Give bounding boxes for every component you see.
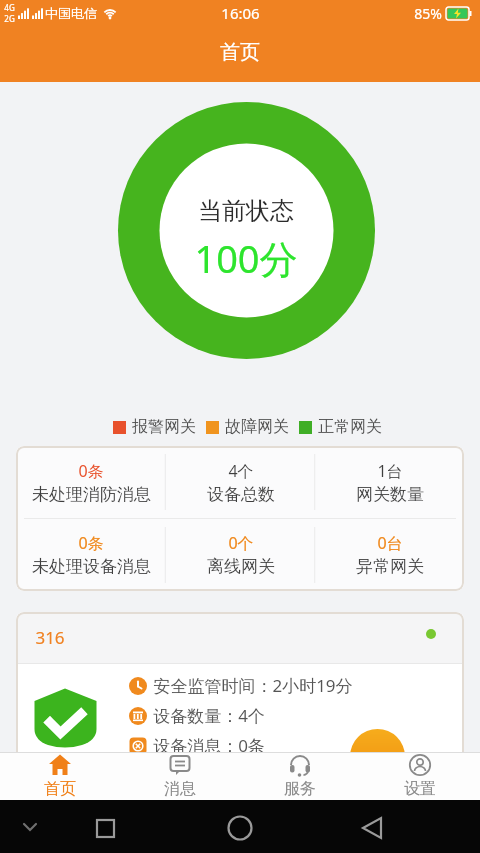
staticText: 4个	[228, 460, 254, 482]
staticText: 首页	[220, 40, 260, 65]
staticText: 1台	[377, 460, 403, 482]
staticText: 故障网关	[225, 417, 289, 437]
button[interactable]: 1台	[315, 446, 464, 518]
staticText: 316	[35, 626, 65, 649]
staticText: 服务	[284, 779, 316, 799]
staticText: 4G	[4, 2, 15, 13]
staticText: 0条	[78, 460, 104, 482]
button[interactable]: 316	[16, 612, 464, 762]
staticText: 设备数量：4个	[153, 704, 265, 727]
staticText: 异常网关	[356, 556, 424, 577]
button[interactable]: 首页	[0, 752, 120, 800]
staticText: 离线网关	[207, 556, 275, 577]
button[interactable]: 消息	[120, 752, 240, 800]
button[interactable]: 0个	[166, 518, 315, 591]
staticText: 当前状态	[198, 196, 294, 226]
staticText: 未处理消防消息	[32, 484, 151, 505]
button[interactable]	[350, 729, 405, 762]
staticText: 0台	[377, 532, 403, 554]
button[interactable]: 0台	[315, 518, 464, 591]
staticText: 0个	[228, 532, 254, 554]
staticText: 安全监管时间：2小时19分	[153, 674, 353, 697]
button[interactable]: 设置	[360, 752, 480, 800]
staticText: 消息	[164, 779, 196, 799]
button[interactable]: 0条	[16, 446, 166, 518]
staticText: 设备总数	[207, 484, 275, 505]
button[interactable]: 4个	[166, 446, 315, 518]
staticText: 未处理设备消息	[32, 556, 151, 577]
staticText: 2G	[4, 13, 15, 24]
staticText: 中国电信	[45, 5, 97, 21]
button[interactable]: 服务	[240, 752, 360, 800]
staticText: 85%	[414, 4, 442, 23]
staticText: 16:06	[221, 3, 260, 23]
button[interactable]: 0条	[16, 518, 166, 591]
staticText: 正常网关	[318, 417, 382, 437]
staticText: 100分	[194, 232, 298, 280]
staticText: 网关数量	[356, 484, 424, 505]
staticText: 设备消息：0条	[153, 734, 265, 757]
staticText: 设置	[404, 779, 436, 799]
staticText: 首页	[44, 779, 76, 799]
staticText: 0条	[78, 532, 104, 554]
staticText: 报警网关	[132, 417, 196, 437]
